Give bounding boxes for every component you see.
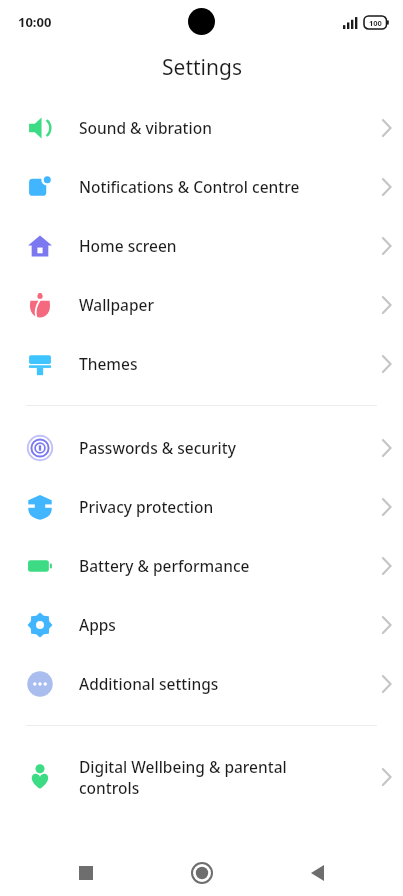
button[interactable]: Additional settings <box>0 654 403 713</box>
button[interactable]: Privacy protection <box>0 477 403 536</box>
button[interactable]: Passwords & security <box>0 418 403 477</box>
button[interactable]: Battery & performance <box>0 536 403 595</box>
staticText: Apps <box>79 614 349 635</box>
staticText: Settings <box>162 53 242 82</box>
staticText: Home screen <box>79 235 349 256</box>
staticText: Notifications & Control centre <box>79 176 349 197</box>
staticText: Themes <box>79 353 349 374</box>
button[interactable]: Home <box>173 850 231 896</box>
staticText: Privacy protection <box>79 496 349 517</box>
staticText: Additional settings <box>79 673 349 694</box>
button[interactable]: Wallpaper <box>0 275 403 334</box>
button[interactable]: Notifications & Control centre <box>0 157 403 216</box>
staticText: Wallpaper <box>79 294 349 315</box>
staticText: 100 <box>369 18 382 28</box>
staticText: Battery & performance <box>79 555 349 576</box>
button[interactable]: Sound & vibration <box>0 98 403 157</box>
button[interactable]: Digital Wellbeing & parental controls <box>0 738 403 816</box>
button[interactable]: Themes <box>0 334 403 393</box>
button[interactable]: Apps <box>0 595 403 654</box>
button[interactable]: Home screen <box>0 216 403 275</box>
staticText: Digital Wellbeing & parental controls <box>79 756 349 799</box>
staticText: Passwords & security <box>79 437 349 458</box>
staticText: 10:00 <box>18 13 52 31</box>
button[interactable]: Recent apps <box>57 850 115 896</box>
staticText: Sound & vibration <box>79 117 349 138</box>
button[interactable]: Back <box>288 850 346 896</box>
